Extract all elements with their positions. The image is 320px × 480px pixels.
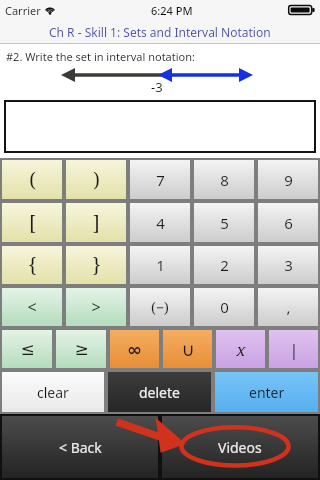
staticText: ∪ <box>181 339 195 360</box>
button[interactable]: < Back <box>2 416 158 478</box>
staticText: -3 <box>151 78 163 96</box>
button[interactable]: ) <box>66 160 126 199</box>
staticText: 3 <box>284 255 293 275</box>
staticText: [ <box>29 210 36 236</box>
staticText: 2 <box>220 255 229 275</box>
staticText: , <box>286 297 291 317</box>
button[interactable]: ≥ <box>56 330 106 368</box>
staticText: 0 <box>220 297 229 317</box>
staticText: 4 <box>156 213 165 233</box>
staticText: clear <box>37 383 69 402</box>
button[interactable]: 1 <box>130 246 190 284</box>
button[interactable]: ∞ <box>110 330 159 368</box>
staticText: Ch R - Skill 1: Sets and Interval Notati… <box>49 24 271 40</box>
staticText: ) <box>93 167 100 193</box>
button[interactable]: delete <box>108 372 211 412</box>
staticText: 5 <box>220 213 229 233</box>
button[interactable]: } <box>66 246 126 284</box>
button[interactable]: enter <box>215 372 318 412</box>
staticText: ≤ <box>20 339 35 359</box>
button[interactable]: Answer input <box>4 100 316 153</box>
staticText: 6:24 PM <box>151 3 193 18</box>
button[interactable]: 3 <box>258 246 318 284</box>
staticText: 7 <box>156 170 165 190</box>
button[interactable]: [ <box>2 203 62 242</box>
button[interactable]: < <box>2 288 62 326</box>
button[interactable]: clear <box>2 372 104 412</box>
button[interactable]: x <box>216 330 265 368</box>
staticText: } <box>92 252 101 278</box>
button[interactable]: 4 <box>130 203 190 242</box>
button[interactable]: 0 <box>194 288 254 326</box>
button[interactable]: , <box>258 288 318 326</box>
staticText: enter <box>249 383 285 402</box>
staticText: Videos <box>218 438 262 457</box>
staticText: Carrier <box>5 3 41 18</box>
button[interactable]: 5 <box>194 203 254 242</box>
button[interactable]: Videos <box>162 416 318 478</box>
button[interactable]: ( <box>2 160 62 199</box>
staticText: > <box>91 296 101 318</box>
button[interactable]: 2 <box>194 246 254 284</box>
staticText: 8 <box>220 170 229 190</box>
button[interactable]: 6 <box>258 203 318 242</box>
staticText: (−) <box>151 298 169 317</box>
staticText: 6 <box>284 213 293 233</box>
staticText: #2. Write the set in interval notation: <box>6 49 195 64</box>
button[interactable]: 7 <box>130 160 190 199</box>
staticText: 1 <box>156 255 165 275</box>
staticText: | <box>289 338 299 361</box>
staticText: < <box>27 296 37 318</box>
staticText: delete <box>139 383 180 402</box>
staticText: x <box>236 338 246 361</box>
button[interactable]: (−) <box>130 288 190 326</box>
button[interactable]: { <box>2 246 62 284</box>
button[interactable]: 9 <box>258 160 318 199</box>
button[interactable]: 8 <box>194 160 254 199</box>
button[interactable]: | <box>269 330 318 368</box>
button[interactable]: > <box>66 288 126 326</box>
staticText: { <box>28 252 37 278</box>
staticText: < Back <box>59 438 102 457</box>
staticText: 9 <box>284 170 293 190</box>
button[interactable]: ∪ <box>163 330 212 368</box>
staticText: ≥ <box>74 339 89 359</box>
button[interactable]: ] <box>66 203 126 242</box>
button[interactable]: Ch R - Skill 1: Sets and Interval Notati… <box>0 20 320 43</box>
button[interactable]: ≤ <box>2 330 52 368</box>
staticText: ( <box>29 167 36 193</box>
staticText: ∞ <box>127 339 142 360</box>
staticText: ] <box>93 210 100 236</box>
